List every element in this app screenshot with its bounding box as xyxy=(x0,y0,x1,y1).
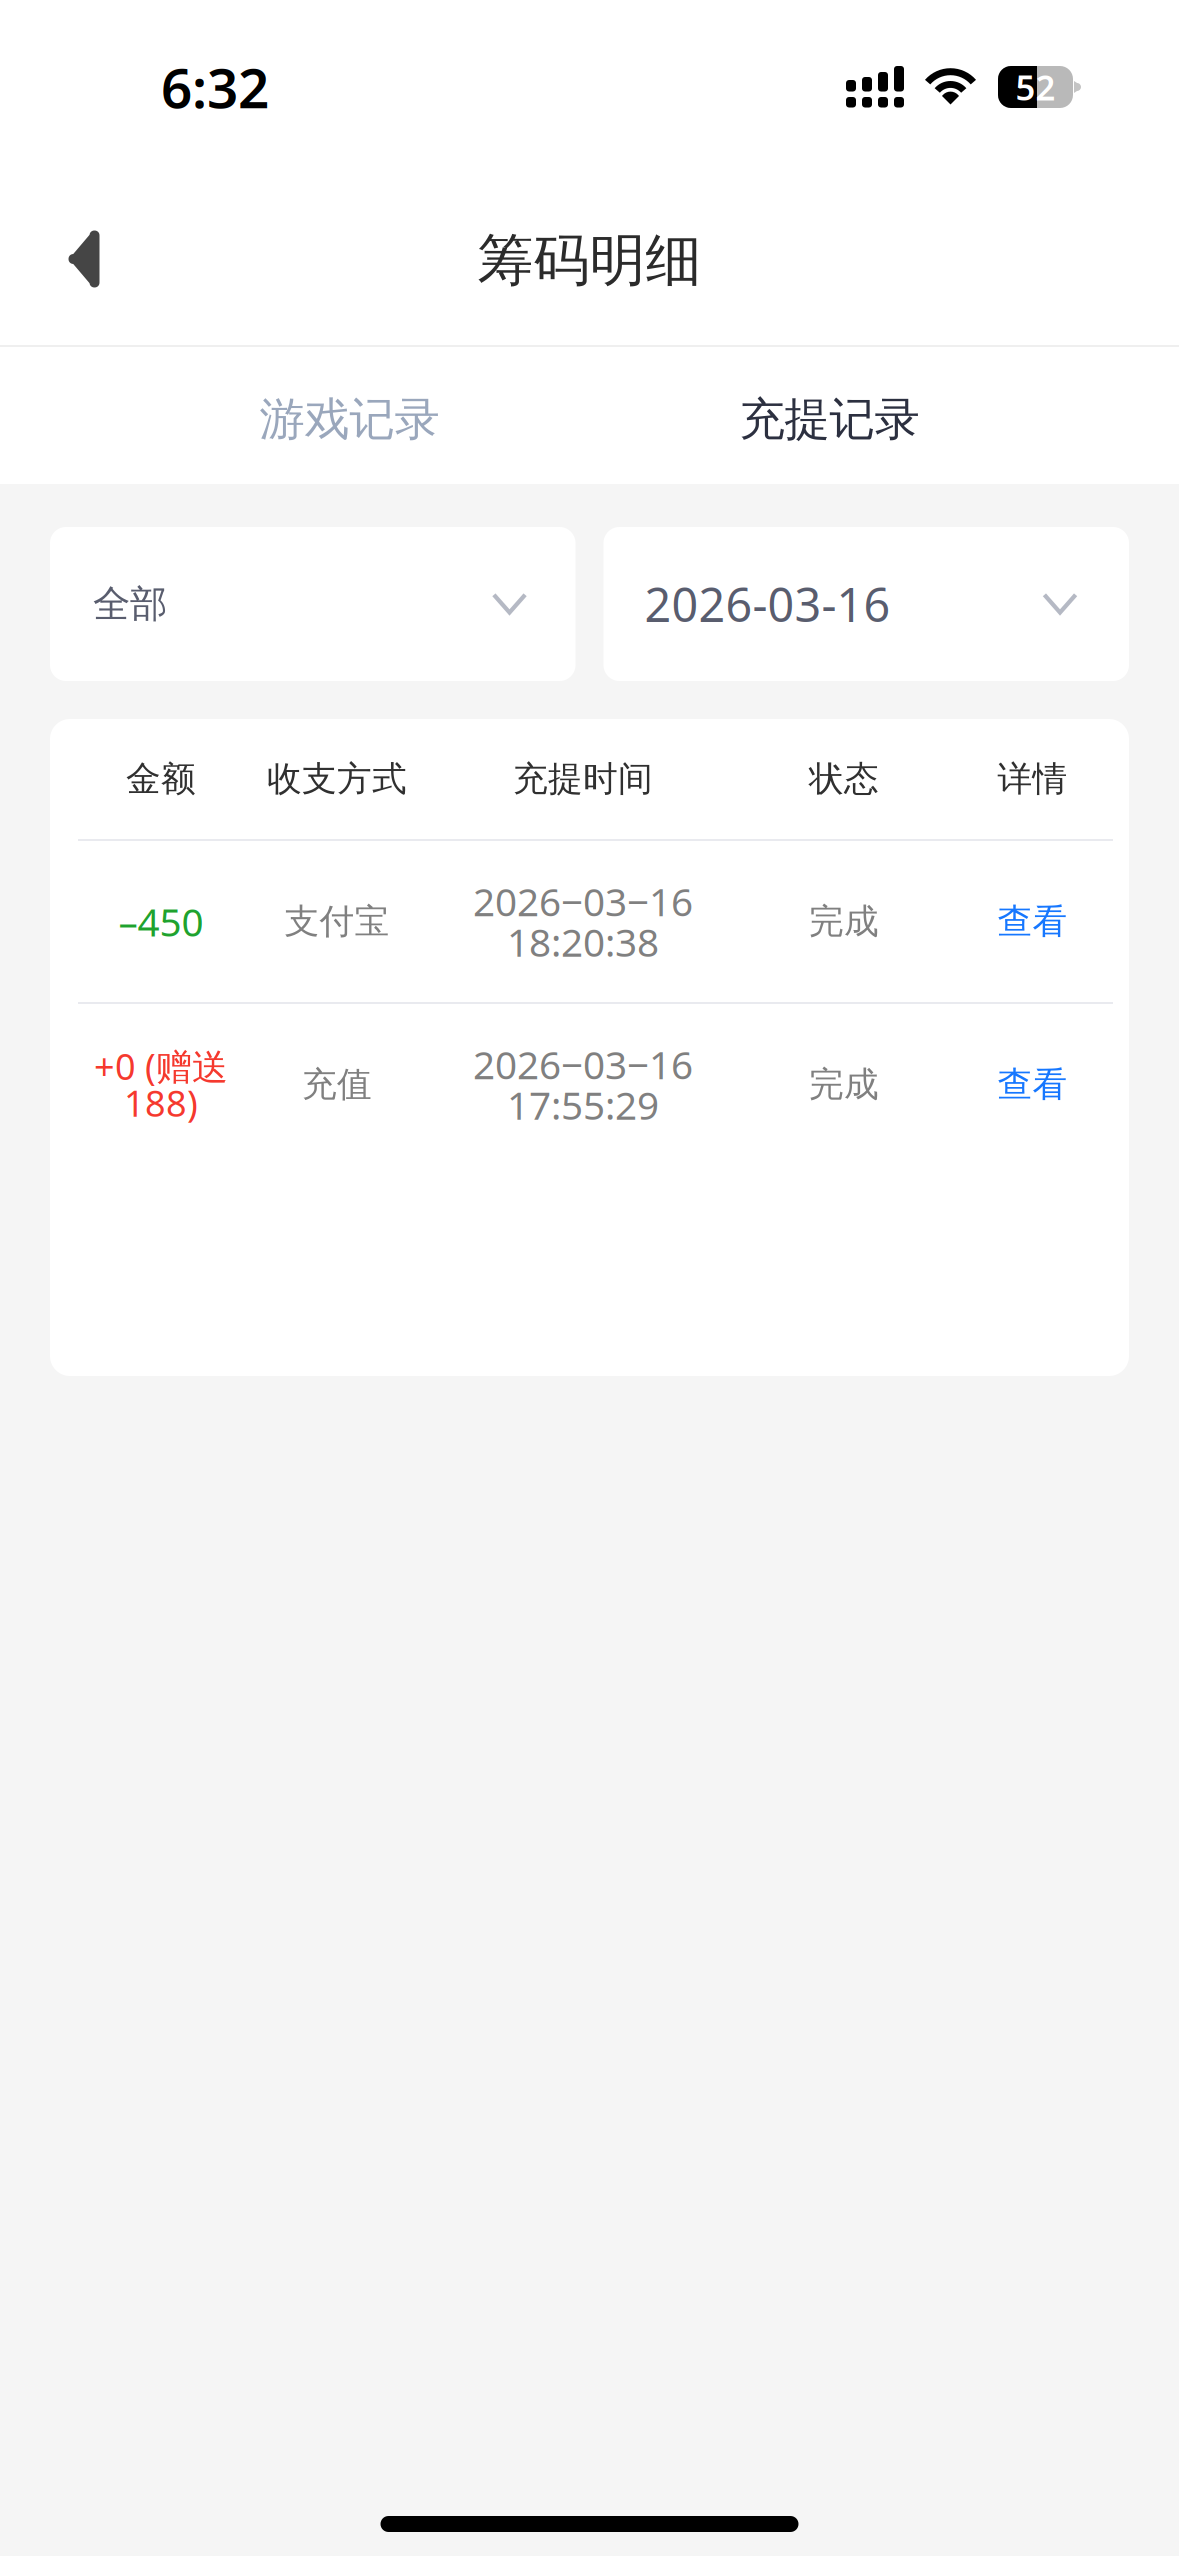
staticText: 全部 xyxy=(93,581,167,627)
staticText: 游戏记录 xyxy=(259,392,439,447)
staticText: 状态 xyxy=(809,758,879,800)
staticText: 2026−03−16 xyxy=(473,876,693,927)
staticText: –450 xyxy=(118,896,203,947)
staticText: +0 (赠送 xyxy=(94,1042,228,1090)
staticText: 18:20:38 xyxy=(507,916,659,967)
staticText: 2026−03−16 xyxy=(473,1039,693,1090)
staticText: 收支方式 xyxy=(267,758,407,800)
button[interactable]: 全部 xyxy=(50,527,575,681)
staticText: 6:32 xyxy=(161,51,269,123)
staticText: 金额 xyxy=(126,758,196,800)
staticText: 充提时间 xyxy=(513,758,653,800)
button[interactable]: 游戏记录 xyxy=(229,347,469,484)
staticText: 完成 xyxy=(809,1063,879,1106)
staticText: 52 xyxy=(1015,64,1055,110)
staticText: 充提记录 xyxy=(739,392,919,447)
staticText: 完成 xyxy=(809,900,879,943)
staticText: 支付宝 xyxy=(284,900,389,943)
button[interactable]: 查看 xyxy=(924,842,1141,1001)
button[interactable]: 查看 xyxy=(924,1005,1141,1164)
button[interactable]: 充提记录 xyxy=(709,347,949,484)
staticText: 188) xyxy=(124,1079,198,1127)
staticText: 筹码明细 xyxy=(477,226,701,295)
staticText: 充值 xyxy=(302,1063,372,1106)
staticText: 查看 xyxy=(997,900,1067,943)
staticText: 详情 xyxy=(997,758,1067,800)
staticText: 查看 xyxy=(997,1063,1067,1106)
staticText: 2026-03-16 xyxy=(644,573,890,635)
button[interactable]: 2026-03-16 xyxy=(603,527,1129,681)
staticText: 17:55:29 xyxy=(507,1079,659,1130)
button[interactable]: Back xyxy=(19,192,147,320)
